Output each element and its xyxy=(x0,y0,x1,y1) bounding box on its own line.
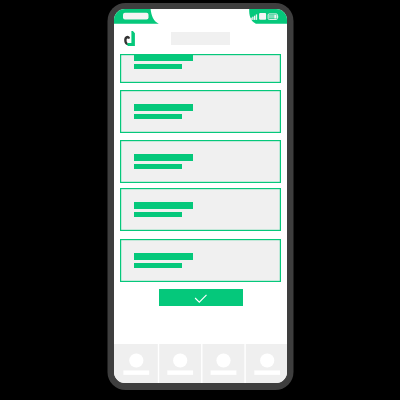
button[interactable] xyxy=(120,54,281,83)
button[interactable]: Confirm xyxy=(159,289,243,306)
button[interactable]: Tab 3 xyxy=(201,344,244,383)
button[interactable] xyxy=(120,188,281,231)
button[interactable] xyxy=(120,140,281,183)
button[interactable] xyxy=(120,90,281,133)
button[interactable]: Tab 1 xyxy=(114,344,158,383)
button[interactable]: App logo xyxy=(124,31,135,46)
button[interactable]: Tab 2 xyxy=(158,344,201,383)
button[interactable] xyxy=(120,239,281,282)
button[interactable]: Tab 4 xyxy=(244,344,287,383)
